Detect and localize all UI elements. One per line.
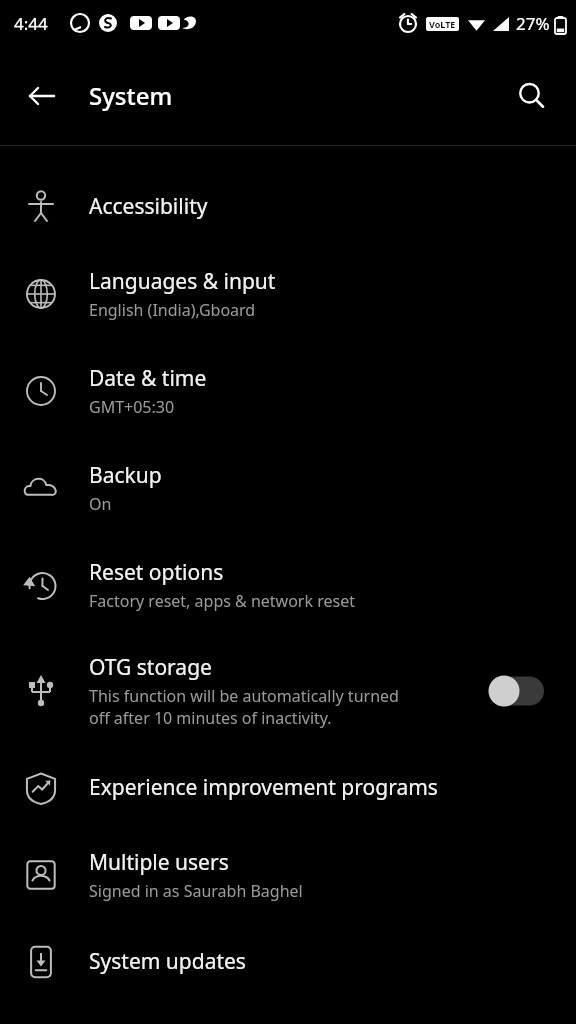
staticText: Accessibility	[89, 192, 208, 221]
button[interactable]: Backup	[0, 439, 576, 536]
button[interactable]: Languages & input	[0, 245, 576, 342]
staticText: System	[89, 79, 173, 112]
staticText: Experience improvement programs	[89, 773, 438, 802]
staticText: Factory reset, apps & network reset	[89, 590, 355, 612]
staticText: Reset options	[89, 558, 224, 587]
staticText: This function will be automatically turn…	[89, 685, 399, 729]
staticText: OTG storage	[89, 653, 212, 682]
button[interactable]: Accessibility	[0, 168, 576, 245]
staticText: VoLTE	[429, 18, 456, 30]
button[interactable]: OTG storage	[0, 633, 576, 749]
button[interactable]: Reset options	[0, 536, 576, 633]
button[interactable]: OTG storage toggle	[488, 671, 554, 711]
button[interactable]: Back	[16, 70, 68, 122]
staticText: 27%	[516, 12, 550, 35]
button[interactable]: Date & time	[0, 342, 576, 439]
staticText: 4:44	[14, 12, 48, 35]
staticText: Backup	[89, 461, 162, 490]
staticText: On	[89, 493, 112, 515]
staticText: Languages & input	[89, 267, 276, 296]
staticText: System updates	[89, 947, 246, 976]
button[interactable]: Search	[506, 70, 558, 122]
button[interactable]: Multiple users	[0, 826, 576, 923]
staticText: Multiple users	[89, 848, 229, 877]
staticText: Date & time	[89, 364, 207, 393]
button[interactable]: Experience improvement programs	[0, 749, 576, 826]
staticText: Signed in as Saurabh Baghel	[89, 880, 303, 902]
button[interactable]: System updates	[0, 923, 576, 1000]
staticText: English (India),Gboard	[89, 299, 256, 321]
staticText: GMT+05:30	[89, 396, 175, 418]
